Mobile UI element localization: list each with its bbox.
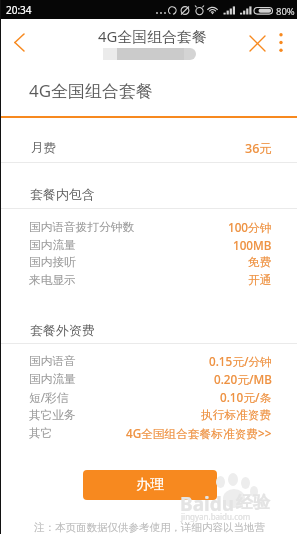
staticText: 4G全国组合套餐 [29,79,154,102]
staticText: 经验 [236,492,270,513]
staticText: 100分钟 [228,219,272,235]
staticText: 80% [276,5,295,18]
staticText: 其它 [29,426,53,441]
staticText: 36元 [245,140,272,157]
button[interactable]: More options [270,28,292,56]
staticText: 4G全国组合套餐标准资费>> [126,425,272,441]
staticText: 国内接听 [29,255,76,270]
staticText: 执行标准资费 [201,408,272,423]
staticText: 100MB [233,237,272,253]
button[interactable]: 办理 [83,470,217,500]
staticText: 来电显示 [29,273,76,288]
button[interactable]: 来电显示 [0,271,297,289]
staticText: 其它业务 [29,408,76,423]
button[interactable]: 国内接听 [0,253,297,271]
staticText: 国内流量 [29,238,76,253]
staticText: 国内语音 [29,354,76,369]
button[interactable]: Close [241,27,273,59]
staticText: Baidu [180,491,235,517]
button[interactable]: 短/彩信 [0,388,297,406]
button[interactable]: 其它 [0,424,297,442]
staticText: 国内语音拨打分钟数 [29,220,135,235]
staticText: 办理 [136,476,164,494]
button[interactable]: Back [0,19,38,65]
staticText: 月费 [31,140,56,156]
staticText: 20:34 [6,3,32,17]
staticText: 免费 [248,255,272,270]
staticText: 国内流量 [29,372,76,387]
staticText: jingyan.baidu.com [181,511,251,522]
staticText: 0.20元/MB [214,371,272,387]
staticText: 0.10元/条 [220,389,272,405]
button[interactable]: 国内流量 [0,370,297,388]
staticText: 4G全国组合套餐 [98,26,207,46]
staticText: 套餐外资费 [30,322,95,338]
staticText: 套餐内包含 [30,186,95,202]
staticText: 注：本页面数据仅供参考使用，详细内容以当地营 [34,521,265,534]
button[interactable]: 国内流量 [0,236,297,254]
button[interactable]: 其它业务 [0,406,297,424]
button[interactable]: 国内语音 [0,352,297,370]
staticText: 0.15元/分钟 [209,353,272,369]
button[interactable]: 国内语音拨打分钟数 [0,218,297,236]
staticText: 短/彩信 [29,389,69,405]
staticText: 开通 [248,273,272,288]
